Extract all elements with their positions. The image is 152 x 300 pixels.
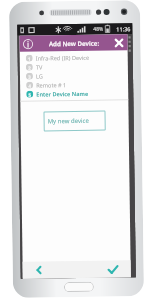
staticText: 3 <box>28 74 31 80</box>
button[interactable]: 1 <box>20 52 128 63</box>
button[interactable]: Confirm <box>103 261 123 277</box>
staticText: Enter Device Name <box>36 90 88 98</box>
button[interactable]: 3 <box>20 70 128 81</box>
staticText: 1 <box>28 56 31 62</box>
staticText: Infra-Red (IR) Device <box>36 54 90 63</box>
button[interactable]: 5 <box>20 88 128 99</box>
staticText: 2 <box>28 65 31 71</box>
button[interactable]: 2 <box>20 61 128 72</box>
button[interactable]: Close <box>112 36 126 49</box>
staticText: Add New Device: <box>48 39 100 47</box>
staticText: Remote # 1 <box>36 81 67 89</box>
staticText: 11:36 <box>116 25 131 32</box>
button[interactable]: My new device <box>43 111 106 131</box>
button[interactable]: 4 <box>20 79 128 90</box>
staticText: 4 <box>28 83 31 89</box>
button[interactable]: Back <box>29 262 49 278</box>
staticText: LG <box>36 72 43 81</box>
staticText: TV <box>36 63 43 72</box>
button[interactable]: Information <box>22 39 34 50</box>
staticText: 5 <box>28 92 31 98</box>
staticText: My new device <box>48 117 90 125</box>
staticText: 48% <box>93 26 103 33</box>
